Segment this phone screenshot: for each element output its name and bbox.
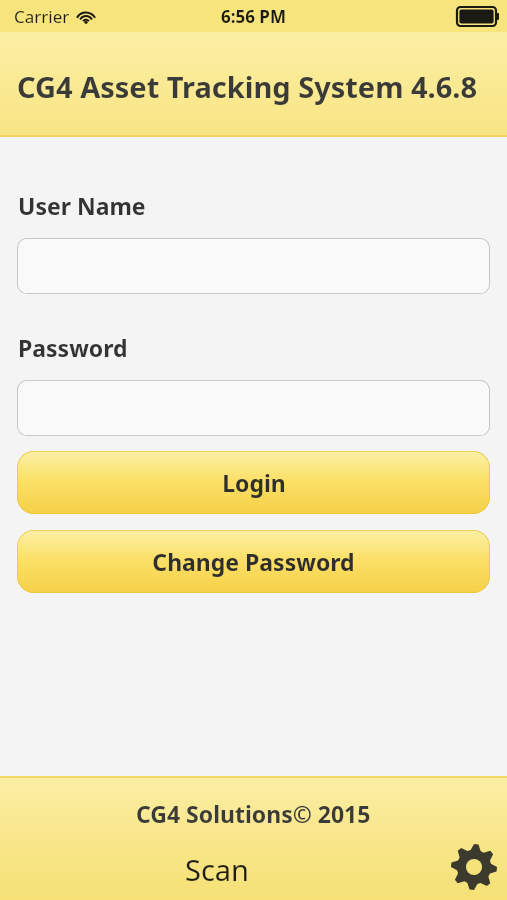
button[interactable]: Login — [17, 451, 490, 514]
button[interactable] — [17, 380, 490, 436]
staticText: Login — [222, 467, 286, 498]
button[interactable]: Change Password — [17, 530, 490, 593]
staticText: User Name — [18, 190, 146, 221]
staticText: Change Password — [152, 546, 355, 577]
staticText: Carrier — [14, 5, 70, 28]
button[interactable]: Scan — [0, 838, 507, 900]
staticText: CG4 Asset Tracking System 4.6.8 — [17, 67, 478, 106]
button[interactable]: Settings — [451, 844, 497, 890]
button[interactable] — [17, 238, 490, 294]
staticText: CG4 Solutions© 2015 — [136, 798, 371, 829]
staticText: Password — [18, 332, 128, 363]
staticText: Scan — [185, 850, 250, 889]
staticText: 6:56 PM — [221, 5, 286, 28]
